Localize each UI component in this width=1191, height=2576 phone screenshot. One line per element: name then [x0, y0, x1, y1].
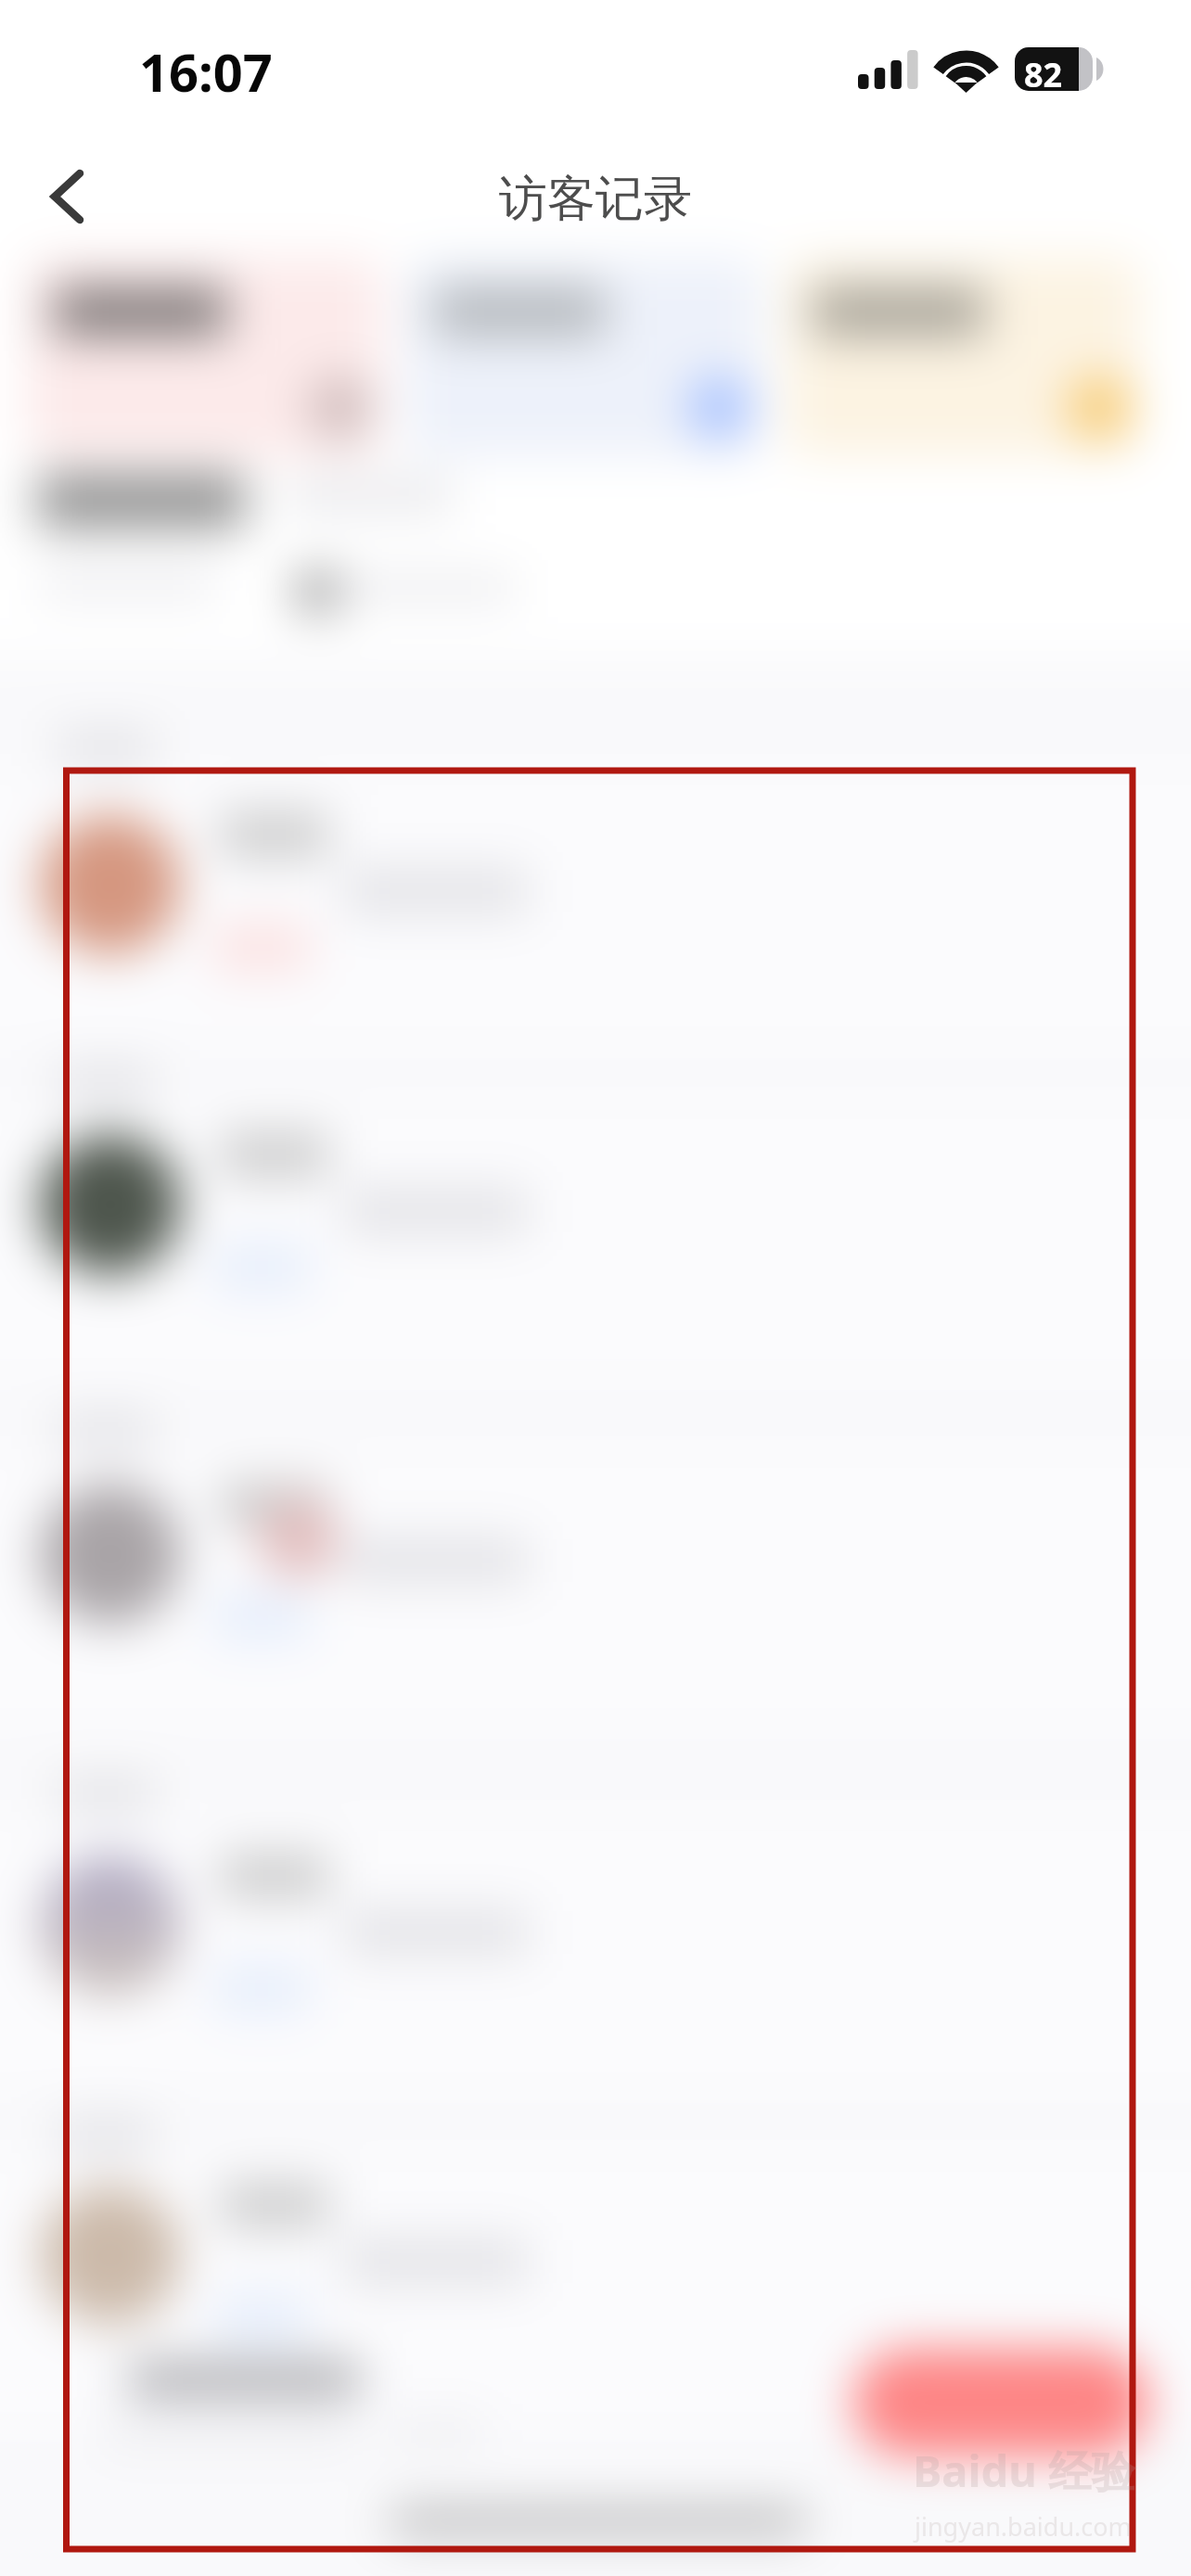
- button[interactable]: [28, 258, 381, 456]
- button[interactable]: [0, 2156, 1191, 2434]
- staticText: 16:07: [139, 36, 273, 107]
- staticText: 82: [1024, 52, 1063, 97]
- button[interactable]: Back: [15, 148, 111, 245]
- button[interactable]: [853, 2349, 1148, 2456]
- button[interactable]: [0, 456, 1191, 656]
- button[interactable]: [0, 1103, 1191, 1382]
- button[interactable]: [0, 1452, 1191, 1730]
- button[interactable]: [0, 1816, 1191, 2094]
- staticText: Baidu 经验: [913, 2441, 1135, 2500]
- button[interactable]: [0, 770, 1191, 1048]
- staticText: jingyan.baidu.com: [915, 2509, 1132, 2544]
- staticText: 访客记录: [499, 169, 692, 230]
- button[interactable]: [407, 258, 761, 456]
- button[interactable]: [787, 258, 1140, 456]
